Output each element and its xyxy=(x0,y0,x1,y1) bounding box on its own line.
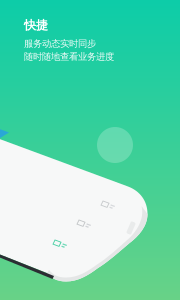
staticText: 服务动态实时同步 xyxy=(24,38,96,49)
staticText: 随时随地查看业务进度 xyxy=(24,51,114,62)
staticText: 快捷 xyxy=(24,18,48,33)
